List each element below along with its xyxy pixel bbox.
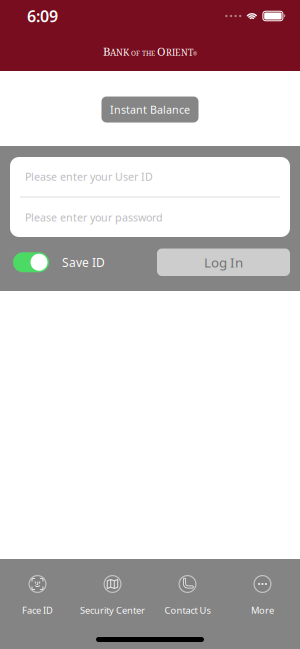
staticText: More <box>251 604 274 616</box>
button[interactable]: Save ID <box>13 252 105 272</box>
staticText: Instant Balance <box>110 102 190 117</box>
staticText: RIENT <box>166 46 193 58</box>
staticText: Face ID <box>22 604 53 616</box>
staticText: Log In <box>204 253 243 271</box>
button[interactable]: Security Center <box>75 575 150 616</box>
staticText: B <box>103 43 110 59</box>
button[interactable]: Log In <box>157 248 290 276</box>
button[interactable]: Instant Balance <box>101 96 198 122</box>
staticText: 6:09 <box>27 5 58 27</box>
staticText: Security Center <box>80 604 145 616</box>
staticText: Please enter your User ID <box>25 170 153 184</box>
button[interactable]: Please enter your User ID <box>10 157 290 197</box>
staticText: ® <box>193 50 197 57</box>
staticText: O <box>157 43 166 59</box>
staticText: Contact Us <box>164 604 210 616</box>
button[interactable]: More <box>225 575 300 616</box>
staticText: OF THE <box>129 48 157 58</box>
button[interactable]: Contact Us <box>150 575 225 616</box>
staticText: Please enter your password <box>25 210 163 224</box>
button[interactable]: Face ID <box>0 575 75 616</box>
staticText: ANK <box>110 46 129 58</box>
button[interactable]: Please enter your password <box>10 197 290 237</box>
staticText: Save ID <box>62 254 105 270</box>
